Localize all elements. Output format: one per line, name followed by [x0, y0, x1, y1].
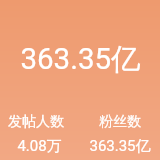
staticText: 发帖人数 [8, 113, 64, 131]
staticText: 363.35亿 [89, 137, 151, 156]
button[interactable]: 粉丝数 [80, 113, 160, 160]
button[interactable]: 发帖人数 [0, 113, 80, 160]
staticText: 粉丝数 [99, 113, 141, 131]
staticText: 363.35亿 [20, 41, 141, 75]
staticText: 4.08万 [17, 137, 62, 156]
